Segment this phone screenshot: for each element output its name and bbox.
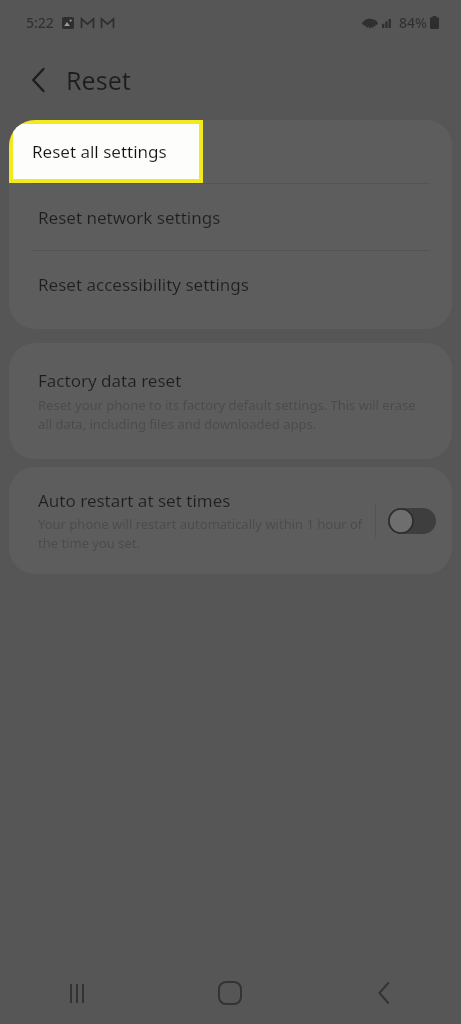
button[interactable]: Auto restart at set times [9,467,375,574]
staticText: Auto restart at set times [38,489,231,512]
staticText: Your phone will restart automatically wi… [38,515,363,552]
staticText: 5:22 [26,13,54,32]
staticText: Reset all settings [32,140,167,163]
button[interactable]: Factory data reset [9,343,452,459]
button[interactable]: Reset accessibility settings [9,251,452,317]
staticText: Reset your phone to its factory default … [38,396,428,433]
staticText: Reset network settings [38,206,221,229]
button[interactable]: Reset network settings [9,184,452,250]
staticText: Reset [66,63,131,97]
button[interactable]: Recents [0,962,153,1024]
staticText: 84% [399,13,427,32]
staticText: Factory data reset [38,369,182,392]
button[interactable]: Home [153,962,307,1024]
button[interactable]: Auto restart toggle [388,508,436,534]
button[interactable]: Back [14,56,62,104]
staticText: Reset accessibility settings [38,273,249,296]
button[interactable]: Reset all settings [9,120,452,183]
